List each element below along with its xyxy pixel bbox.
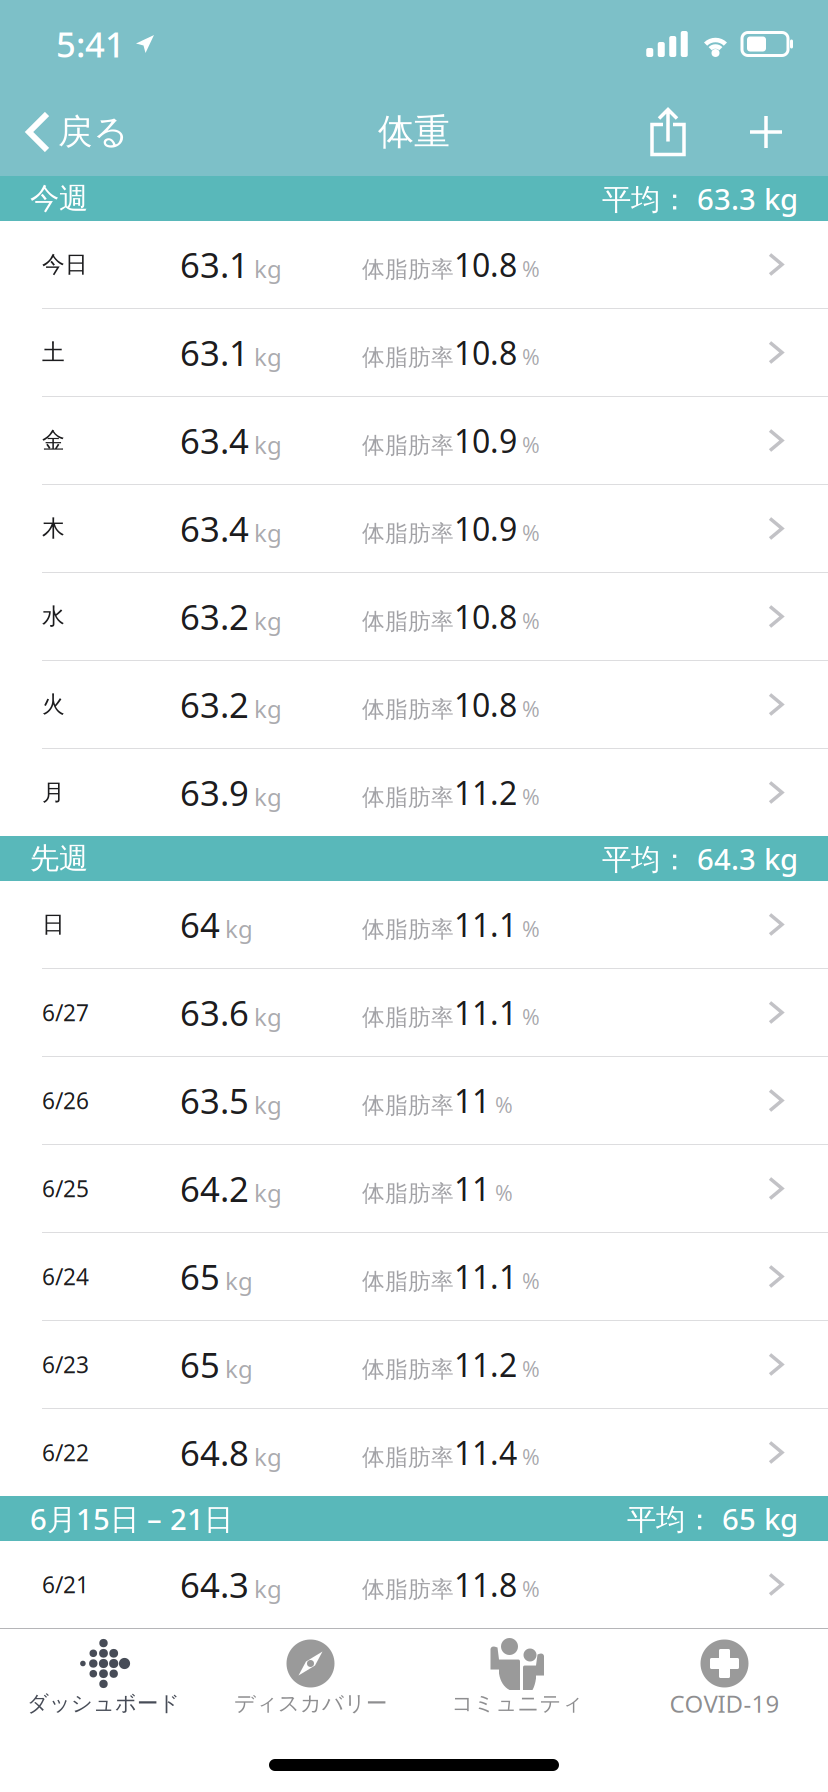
staticText: 64.3 <box>180 1561 249 1607</box>
staticText: 6月15日 – 21日 <box>30 1499 233 1538</box>
button[interactable]: 6/27 <box>0 969 828 1056</box>
staticText: % <box>522 342 540 371</box>
staticText: kg <box>254 693 282 725</box>
staticText: 6/23 <box>42 1349 89 1379</box>
button[interactable]: 6/23 <box>0 1321 828 1408</box>
staticText: ダッシュボード <box>27 1690 180 1717</box>
staticText: % <box>522 1266 540 1295</box>
staticText: 木 <box>42 515 65 542</box>
staticText: 体脂肪率 <box>362 431 454 459</box>
button[interactable]: 土 <box>0 309 828 396</box>
staticText: 土 <box>42 339 65 366</box>
staticText: 11.2 <box>454 1343 517 1386</box>
button[interactable]: 6/25 <box>0 1145 828 1232</box>
staticText: 6/21 <box>42 1569 89 1599</box>
staticText: % <box>495 1090 513 1119</box>
staticText: 10.8 <box>454 243 517 286</box>
staticText: % <box>522 1002 540 1031</box>
staticText: kg <box>225 1353 253 1385</box>
button[interactable]: Add <box>722 88 810 176</box>
staticText: 体脂肪率 <box>362 1575 454 1603</box>
staticText: kg <box>254 1441 282 1473</box>
button[interactable]: ディスカバリー <box>207 1634 414 1720</box>
staticText: 10.8 <box>454 683 517 726</box>
staticText: % <box>522 1354 540 1383</box>
staticText: % <box>522 1574 540 1603</box>
staticText: 10.9 <box>454 507 517 550</box>
staticText: 63.2 <box>180 681 249 727</box>
staticText: kg <box>254 517 282 549</box>
staticText: 月 <box>42 779 65 806</box>
staticText: 11.8 <box>454 1563 517 1606</box>
staticText: 平均： 64.3 kg <box>602 839 798 878</box>
staticText: 63.1 <box>180 241 249 287</box>
staticText: 6/25 <box>42 1173 89 1203</box>
staticText: kg <box>254 1089 282 1121</box>
staticText: 先週 <box>30 840 88 876</box>
button[interactable]: 今日 <box>0 221 828 308</box>
button[interactable]: 日 <box>0 881 828 968</box>
staticText: 10.9 <box>454 419 517 462</box>
button[interactable]: ダッシュボード <box>0 1634 207 1720</box>
staticText: 今週 <box>30 180 88 216</box>
staticText: 体脂肪率 <box>362 1179 454 1207</box>
staticText: 6/22 <box>42 1437 89 1467</box>
staticText: 65 <box>180 1253 220 1299</box>
staticText: kg <box>254 341 282 373</box>
staticText: 平均： 63.3 kg <box>602 179 798 218</box>
staticText: 体脂肪率 <box>362 1003 454 1031</box>
button[interactable]: コミュニティ <box>414 1634 621 1720</box>
staticText: 体脂肪率 <box>362 343 454 371</box>
staticText: kg <box>254 605 282 637</box>
staticText: % <box>522 782 540 811</box>
staticText: 11.1 <box>454 991 517 1034</box>
button[interactable]: 木 <box>0 485 828 572</box>
staticText: 体脂肪率 <box>362 519 454 547</box>
button[interactable]: Share <box>614 88 722 176</box>
button[interactable]: 水 <box>0 573 828 660</box>
staticText: 11.4 <box>454 1431 517 1474</box>
staticText: 63.1 <box>180 329 249 375</box>
staticText: 体脂肪率 <box>362 695 454 723</box>
button[interactable]: 6/24 <box>0 1233 828 1320</box>
staticText: 10.8 <box>454 331 517 374</box>
staticText: 63.9 <box>180 769 249 815</box>
staticText: 64.8 <box>180 1429 249 1475</box>
staticText: 10.8 <box>454 595 517 638</box>
staticText: 11.2 <box>454 771 517 814</box>
staticText: 11.1 <box>454 1255 517 1298</box>
staticText: COVID-19 <box>669 1688 779 1719</box>
button[interactable]: 金 <box>0 397 828 484</box>
staticText: 体脂肪率 <box>362 915 454 943</box>
staticText: 体脂肪率 <box>362 1443 454 1471</box>
staticText: 64.2 <box>180 1165 249 1211</box>
button[interactable]: 月 <box>0 749 828 836</box>
staticText: 6/24 <box>42 1261 89 1291</box>
staticText: % <box>522 914 540 943</box>
staticText: % <box>495 1178 513 1207</box>
staticText: 戻る <box>58 111 128 153</box>
staticText: 火 <box>42 691 65 718</box>
button[interactable]: 戻る <box>0 88 142 176</box>
staticText: % <box>522 694 540 723</box>
staticText: 63.4 <box>180 417 249 463</box>
staticText: kg <box>254 1001 282 1033</box>
staticText: kg <box>225 1265 253 1297</box>
staticText: 6/27 <box>42 997 89 1027</box>
button[interactable]: 6/21 <box>0 1541 828 1628</box>
staticText: 63.2 <box>180 593 249 639</box>
staticText: 日 <box>42 911 65 938</box>
staticText: 63.4 <box>180 505 249 551</box>
button[interactable]: 6/26 <box>0 1057 828 1144</box>
staticText: ディスカバリー <box>234 1690 387 1717</box>
staticText: 体脂肪率 <box>362 1355 454 1383</box>
staticText: kg <box>254 781 282 813</box>
staticText: % <box>522 254 540 283</box>
staticText: 63.6 <box>180 989 249 1035</box>
button[interactable]: COVID-19 <box>621 1634 828 1720</box>
button[interactable]: 6/22 <box>0 1409 828 1496</box>
button[interactable]: 火 <box>0 661 828 748</box>
staticText: 11.1 <box>454 903 517 946</box>
staticText: 6/26 <box>42 1085 89 1115</box>
staticText: 水 <box>42 603 65 630</box>
